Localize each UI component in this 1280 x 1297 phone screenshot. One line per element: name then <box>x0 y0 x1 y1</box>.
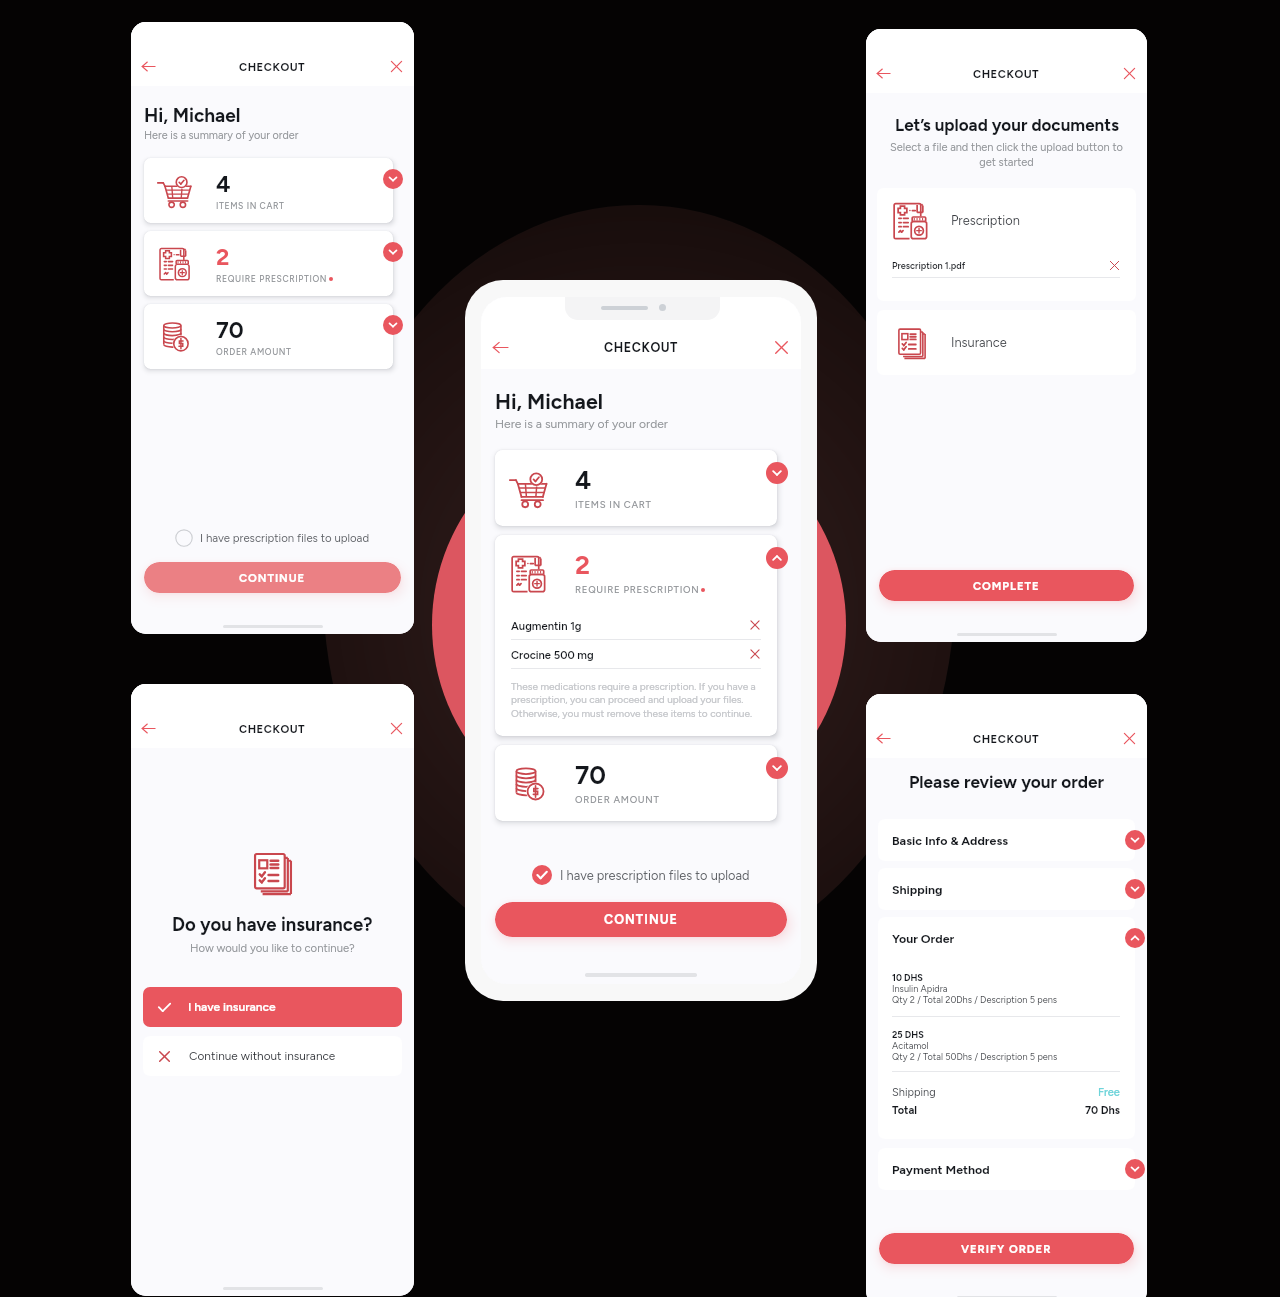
staticText: CHECKOUT <box>604 340 678 355</box>
button[interactable]: Close <box>143 1036 402 1076</box>
staticText: Let’s upload your documents <box>895 115 1119 135</box>
staticText: Basic Info & Address <box>892 833 1008 848</box>
staticText: ITEMS IN CART <box>216 201 285 211</box>
button[interactable]: Expand <box>383 169 403 189</box>
button[interactable]: 2 <box>495 535 777 736</box>
button[interactable]: Close <box>157 1049 172 1064</box>
button[interactable]: 2 <box>144 231 393 296</box>
staticText: 2 <box>216 243 230 271</box>
button[interactable]: Collapse <box>766 547 788 569</box>
staticText: Hi, Michael <box>495 389 603 415</box>
button[interactable]: Close <box>1109 260 1120 271</box>
button[interactable]: Expand <box>383 315 403 335</box>
staticText: CHECKOUT <box>239 60 306 73</box>
button[interactable]: Prescription <box>877 188 1136 301</box>
staticText: CHECKOUT <box>973 67 1040 80</box>
button[interactable]: COMPLETE <box>879 570 1134 601</box>
button[interactable]: Back <box>141 721 156 736</box>
button[interactable]: Back <box>876 66 891 81</box>
button[interactable]: Expand <box>766 757 788 779</box>
staticText: Your Order <box>892 931 955 946</box>
button[interactable]: 70 <box>144 304 393 369</box>
staticText: How would you like to continue? <box>190 941 355 955</box>
staticText: 4 <box>575 465 592 496</box>
staticText: Please review your order <box>909 772 1104 793</box>
button[interactable]: Your Order <box>878 917 1135 1139</box>
staticText: Payment Method <box>892 1162 990 1177</box>
button[interactable]: I have insurance <box>143 987 402 1027</box>
button[interactable]: Close <box>749 648 761 660</box>
button[interactable]: Shipping <box>878 868 1135 910</box>
staticText: Do you have insurance? <box>172 913 373 935</box>
button[interactable]: I have prescription files to upload <box>532 865 750 885</box>
button[interactable]: Back <box>492 339 509 356</box>
staticText: 10 DHS <box>892 972 923 983</box>
staticText: VERIFY ORDER <box>961 1242 1052 1255</box>
staticText: I have insurance <box>188 1000 276 1014</box>
staticText: Crocine 500 mg <box>511 648 594 661</box>
button[interactable]: Expand <box>1125 1159 1145 1179</box>
staticText: Free <box>1098 1086 1120 1099</box>
staticText: Acitamol <box>892 1040 929 1051</box>
button[interactable]: Close <box>773 339 790 356</box>
staticText: ORDER AMOUNT <box>216 347 292 357</box>
staticText: ORDER AMOUNT <box>575 794 660 806</box>
staticText: 2 <box>575 550 590 581</box>
staticText: CHECKOUT <box>239 722 306 735</box>
button[interactable]: 70 <box>495 745 777 821</box>
staticText: Insulin Apidra <box>892 983 948 994</box>
button[interactable]: Basic Info & Address <box>878 819 1135 861</box>
button[interactable]: Expand <box>766 462 788 484</box>
button[interactable]: Expand <box>1125 879 1145 899</box>
staticText: REQUIRE PRESCRIPTION <box>216 274 328 284</box>
staticText: Select a file and then click the upload … <box>889 141 1124 168</box>
staticText: Continue without insurance <box>189 1049 336 1063</box>
button[interactable]: Close <box>1122 731 1137 746</box>
button[interactable]: Expand <box>383 242 403 262</box>
button[interactable]: Close <box>389 721 404 736</box>
button[interactable]: CONTINUE <box>495 902 787 937</box>
staticText: CONTINUE <box>604 912 678 927</box>
staticText: 70 Dhs <box>1085 1104 1120 1117</box>
button[interactable]: VERIFY ORDER <box>879 1233 1134 1264</box>
staticText: Shipping <box>892 1086 936 1099</box>
button[interactable]: I have prescription files to upload <box>175 529 370 547</box>
staticText: CONTINUE <box>239 571 306 584</box>
button[interactable]: Collapse <box>1125 928 1145 948</box>
staticText: 25 DHS <box>892 1029 924 1040</box>
staticText: Here is a summary of your order <box>495 417 668 432</box>
staticText: CHECKOUT <box>973 732 1040 745</box>
button[interactable]: Payment Method <box>878 1148 1135 1190</box>
staticText: These medications require a prescription… <box>511 680 761 720</box>
staticText: 4 <box>216 170 231 198</box>
staticText: REQUIRE PRESCRIPTION <box>575 584 700 596</box>
staticText: Qty 2 / Total 50Dhs / Description 5 pens <box>892 1051 1058 1062</box>
button[interactable]: Back <box>876 731 891 746</box>
staticText: Here is a summary of your order <box>144 129 299 142</box>
staticText: Prescription <box>951 213 1020 228</box>
staticText: 70 <box>216 316 244 344</box>
button[interactable]: Expand <box>1125 830 1145 850</box>
staticText: Qty 2 / Total 20Dhs / Description 5 pens <box>892 994 1058 1005</box>
staticText: Hi, Michael <box>144 104 241 127</box>
staticText: ITEMS IN CART <box>575 499 652 511</box>
staticText: 70 <box>575 760 607 791</box>
button[interactable]: Close <box>749 619 761 631</box>
staticText: I have prescription files to upload <box>200 531 370 545</box>
staticText: Augmentin 1g <box>511 619 582 632</box>
staticText: I have prescription files to upload <box>560 868 750 883</box>
staticText: Prescription 1.pdf <box>892 260 966 271</box>
button[interactable]: Insurance <box>877 310 1136 375</box>
button[interactable]: Close <box>1122 66 1137 81</box>
button[interactable]: 4 <box>495 450 777 526</box>
staticText: Total <box>892 1104 917 1117</box>
staticText: COMPLETE <box>973 579 1040 592</box>
staticText: Shipping <box>892 882 943 897</box>
button[interactable]: 4 <box>144 158 393 223</box>
staticText: Insurance <box>951 335 1007 350</box>
button[interactable]: Close <box>389 59 404 74</box>
button[interactable]: Back <box>141 59 156 74</box>
button[interactable]: CONTINUE <box>144 562 401 593</box>
